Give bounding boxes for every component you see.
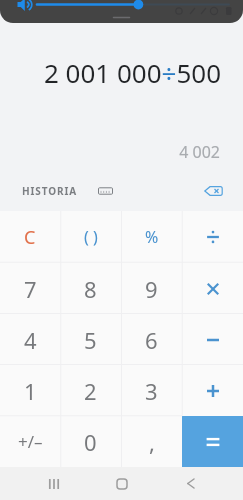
button[interactable]: Home [102, 467, 142, 500]
button[interactable]: HISTORIA [22, 175, 113, 207]
button[interactable]: Recent apps [34, 467, 74, 500]
staticText: +/– [18, 430, 43, 453]
button[interactable]: Divide [182, 211, 243, 263]
staticText: 8 [84, 274, 97, 304]
staticText: 2 [84, 376, 97, 406]
button[interactable]: 7 [0, 263, 60, 314]
other: Subtract [205, 332, 221, 348]
button[interactable]: ( ) [60, 211, 121, 263]
staticText: 4 002 [0, 141, 220, 163]
button[interactable]: 0 [60, 416, 121, 467]
staticText: C [24, 225, 36, 250]
button[interactable]: Equals [182, 416, 243, 467]
staticText: 1 [24, 376, 37, 406]
button[interactable]: 4 [0, 314, 60, 365]
button[interactable]: Back [170, 467, 210, 500]
button[interactable]: Add [182, 365, 243, 416]
staticText: 9 [145, 274, 158, 304]
button[interactable]: 3 [121, 365, 182, 416]
button[interactable]: Backspace [197, 175, 229, 207]
button[interactable]: 6 [121, 314, 182, 365]
staticText: 7 [24, 274, 37, 304]
button[interactable]: % [121, 211, 182, 263]
button[interactable]: Subtract [182, 314, 243, 365]
other: Multiply [205, 281, 221, 297]
button[interactable]: C [0, 211, 60, 263]
staticText: 4 [24, 325, 37, 355]
staticText: 5 [84, 325, 97, 355]
button[interactable]: +/– [0, 416, 60, 467]
button[interactable]: 2 [60, 365, 121, 416]
button[interactable]: 9 [121, 263, 182, 314]
staticText: 3 [145, 376, 158, 406]
button[interactable]: 5 [60, 314, 121, 365]
button[interactable]: Multiply [182, 263, 243, 314]
button[interactable]: 8 [60, 263, 121, 314]
button[interactable]: , [121, 416, 182, 467]
staticText: ( ) [84, 226, 98, 248]
staticText: HISTORIA [22, 184, 78, 198]
staticText: 0 [84, 427, 97, 457]
button[interactable]: 1 [0, 365, 60, 416]
staticText: % [145, 226, 159, 248]
other: Divide [205, 229, 221, 245]
other: Add [205, 383, 221, 399]
other: Equals [205, 434, 221, 450]
staticText: , [149, 427, 155, 457]
staticText: 2 001 000÷500 [0, 55, 221, 90]
staticText: 6 [145, 325, 158, 355]
